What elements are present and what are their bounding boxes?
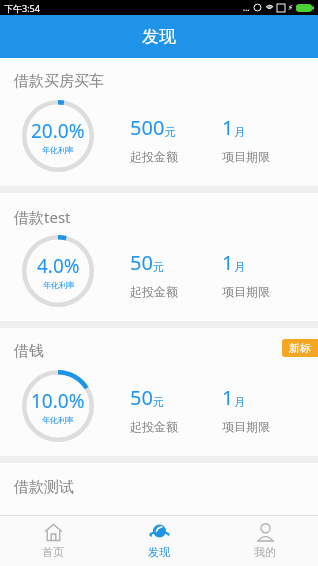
- staticText: 项目期限: [222, 284, 270, 299]
- staticText: 新标: [289, 341, 311, 355]
- staticText: 借款买房买车: [14, 72, 104, 91]
- staticText: 下午3:54: [4, 2, 40, 14]
- staticText: 500: [130, 114, 165, 141]
- staticText: 50: [130, 384, 153, 411]
- staticText: 元: [153, 260, 164, 274]
- staticText: 20.0%: [31, 118, 85, 144]
- staticText: 1: [222, 384, 234, 411]
- staticText: 项目期限: [222, 149, 270, 164]
- staticText: ...: [243, 2, 250, 13]
- button[interactable]: 借款test: [0, 193, 318, 321]
- staticText: 年化利率: [43, 280, 75, 290]
- staticText: 4.0%: [37, 253, 80, 279]
- staticText: 起投金额: [130, 149, 178, 164]
- staticText: 1: [222, 114, 234, 141]
- staticText: 月: [234, 395, 245, 409]
- staticText: 首页: [42, 545, 64, 559]
- staticText: 1: [222, 249, 234, 276]
- button[interactable]: 借款测试: [0, 463, 318, 515]
- staticText: 年化利率: [42, 145, 74, 155]
- button[interactable]: 借款买房买车: [0, 58, 318, 186]
- staticText: 起投金额: [130, 419, 178, 434]
- staticText: 月: [234, 125, 245, 139]
- staticText: 借款test: [14, 207, 71, 227]
- staticText: 项目期限: [222, 419, 270, 434]
- staticText: 元: [165, 125, 176, 139]
- staticText: 年化利率: [42, 415, 74, 425]
- button[interactable]: 借钱: [0, 328, 318, 456]
- button[interactable]: 我的: [212, 516, 318, 566]
- staticText: 10.0%: [31, 388, 85, 414]
- staticText: 元: [153, 395, 164, 409]
- staticText: 月: [234, 260, 245, 274]
- staticText: 我的: [254, 545, 276, 559]
- staticText: 起投金额: [130, 284, 178, 299]
- staticText: 借钱: [14, 342, 44, 361]
- staticText: 发现: [148, 545, 170, 559]
- staticText: 50: [130, 249, 153, 276]
- button[interactable]: 首页: [0, 516, 106, 566]
- button[interactable]: 发现: [106, 516, 212, 566]
- staticText: ⚡: [288, 4, 293, 12]
- staticText: 发现: [142, 26, 176, 47]
- staticText: 借款测试: [14, 478, 74, 497]
